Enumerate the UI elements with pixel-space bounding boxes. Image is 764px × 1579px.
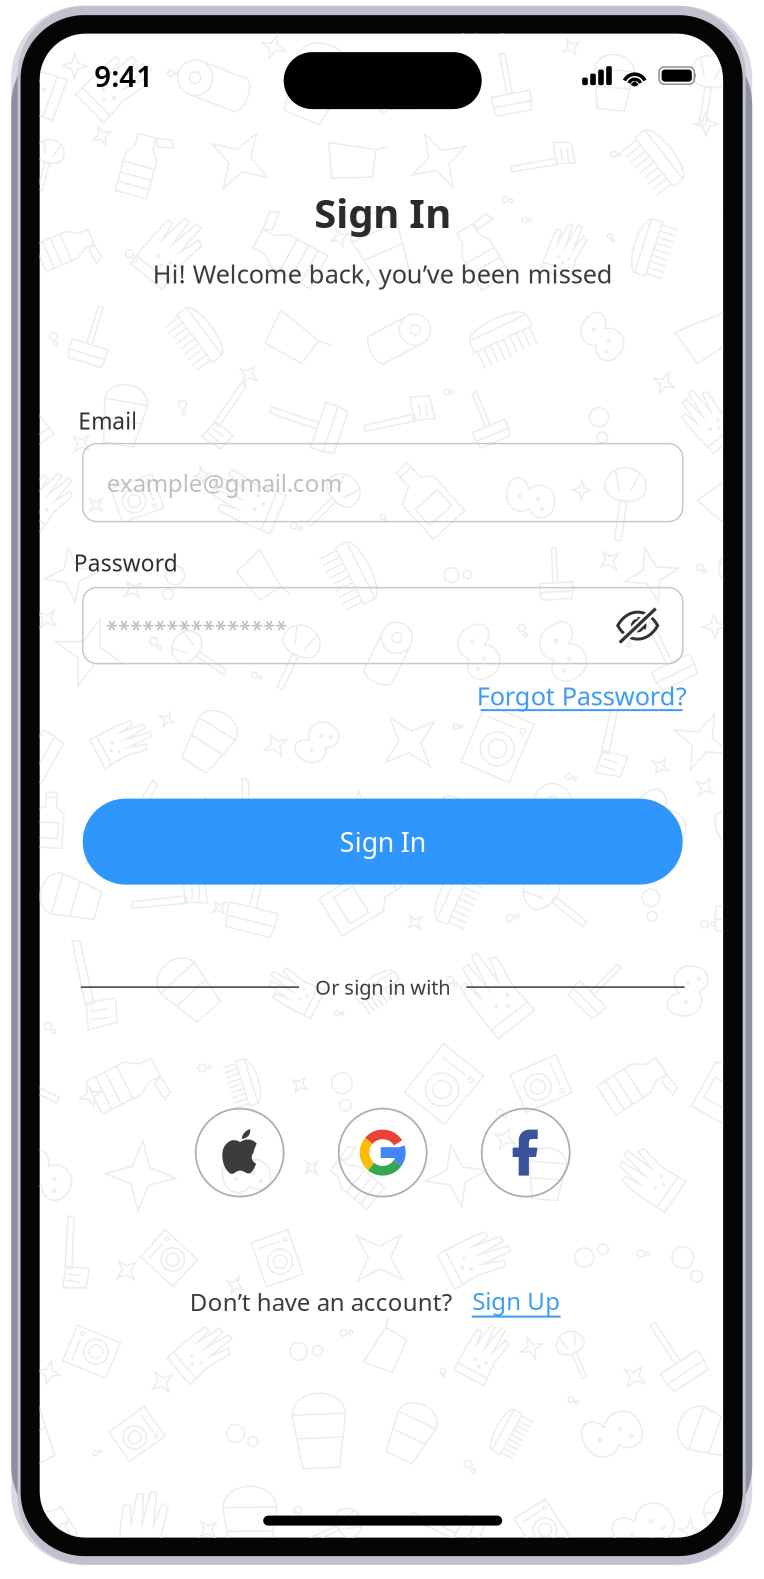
staticText: Don’t have an account? (190, 1286, 452, 1318)
staticText: Or sign in with (315, 974, 450, 1000)
staticText: Email (78, 405, 137, 436)
staticText: Hi! Welcome back, you’ve been missed (153, 257, 613, 290)
staticText: Forgot Password? (477, 679, 687, 712)
staticText: Password (74, 547, 178, 578)
button[interactable]: Sign Up (472, 1280, 561, 1326)
staticText: Sign Up (472, 1285, 560, 1317)
button[interactable]: example@gmail.com (83, 444, 683, 522)
button[interactable]: Show password (615, 607, 661, 645)
button[interactable]: Sign In (83, 799, 683, 885)
staticText: 9:41 (94, 56, 153, 95)
staticText: example@gmail.com (107, 467, 342, 499)
button[interactable]: Forgot Password? (481, 683, 683, 721)
button[interactable]: Sign in with Google (339, 1109, 427, 1197)
staticText: Sign In (314, 186, 451, 239)
button[interactable]: Sign in with Facebook (482, 1109, 570, 1197)
staticText: Sign In (340, 824, 426, 859)
button[interactable]: Sign in with Apple (196, 1109, 284, 1197)
